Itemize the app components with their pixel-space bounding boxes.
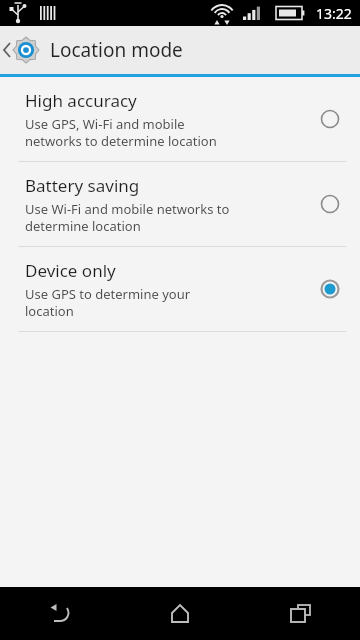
- staticText: High accuracy: [25, 89, 137, 112]
- button[interactable]: Device only: [0, 247, 360, 331]
- button[interactable]: Recent apps: [240, 587, 360, 640]
- staticText: Use GPS to determine your location: [25, 285, 191, 320]
- button[interactable]: Back: [0, 26, 360, 74]
- button[interactable]: High accuracy: [0, 77, 360, 161]
- staticText: Device only: [25, 259, 116, 282]
- button[interactable]: Home: [120, 587, 240, 640]
- staticText: Use Wi-Fi and mobile networks to determi…: [25, 200, 230, 235]
- button[interactable]: Back: [0, 587, 120, 640]
- staticText: 13:22: [316, 4, 352, 23]
- staticText: Battery saving: [25, 174, 140, 197]
- staticText: Use GPS, Wi-Fi and mobile networks to de…: [25, 115, 217, 150]
- button[interactable]: Battery saving: [0, 162, 360, 246]
- button[interactable]: High accuracy: [300, 77, 360, 161]
- button[interactable]: Battery saving: [300, 162, 360, 246]
- staticText: Location mode: [50, 37, 183, 63]
- button[interactable]: Device only selected: [300, 247, 360, 331]
- button[interactable]: Back: [0, 26, 48, 74]
